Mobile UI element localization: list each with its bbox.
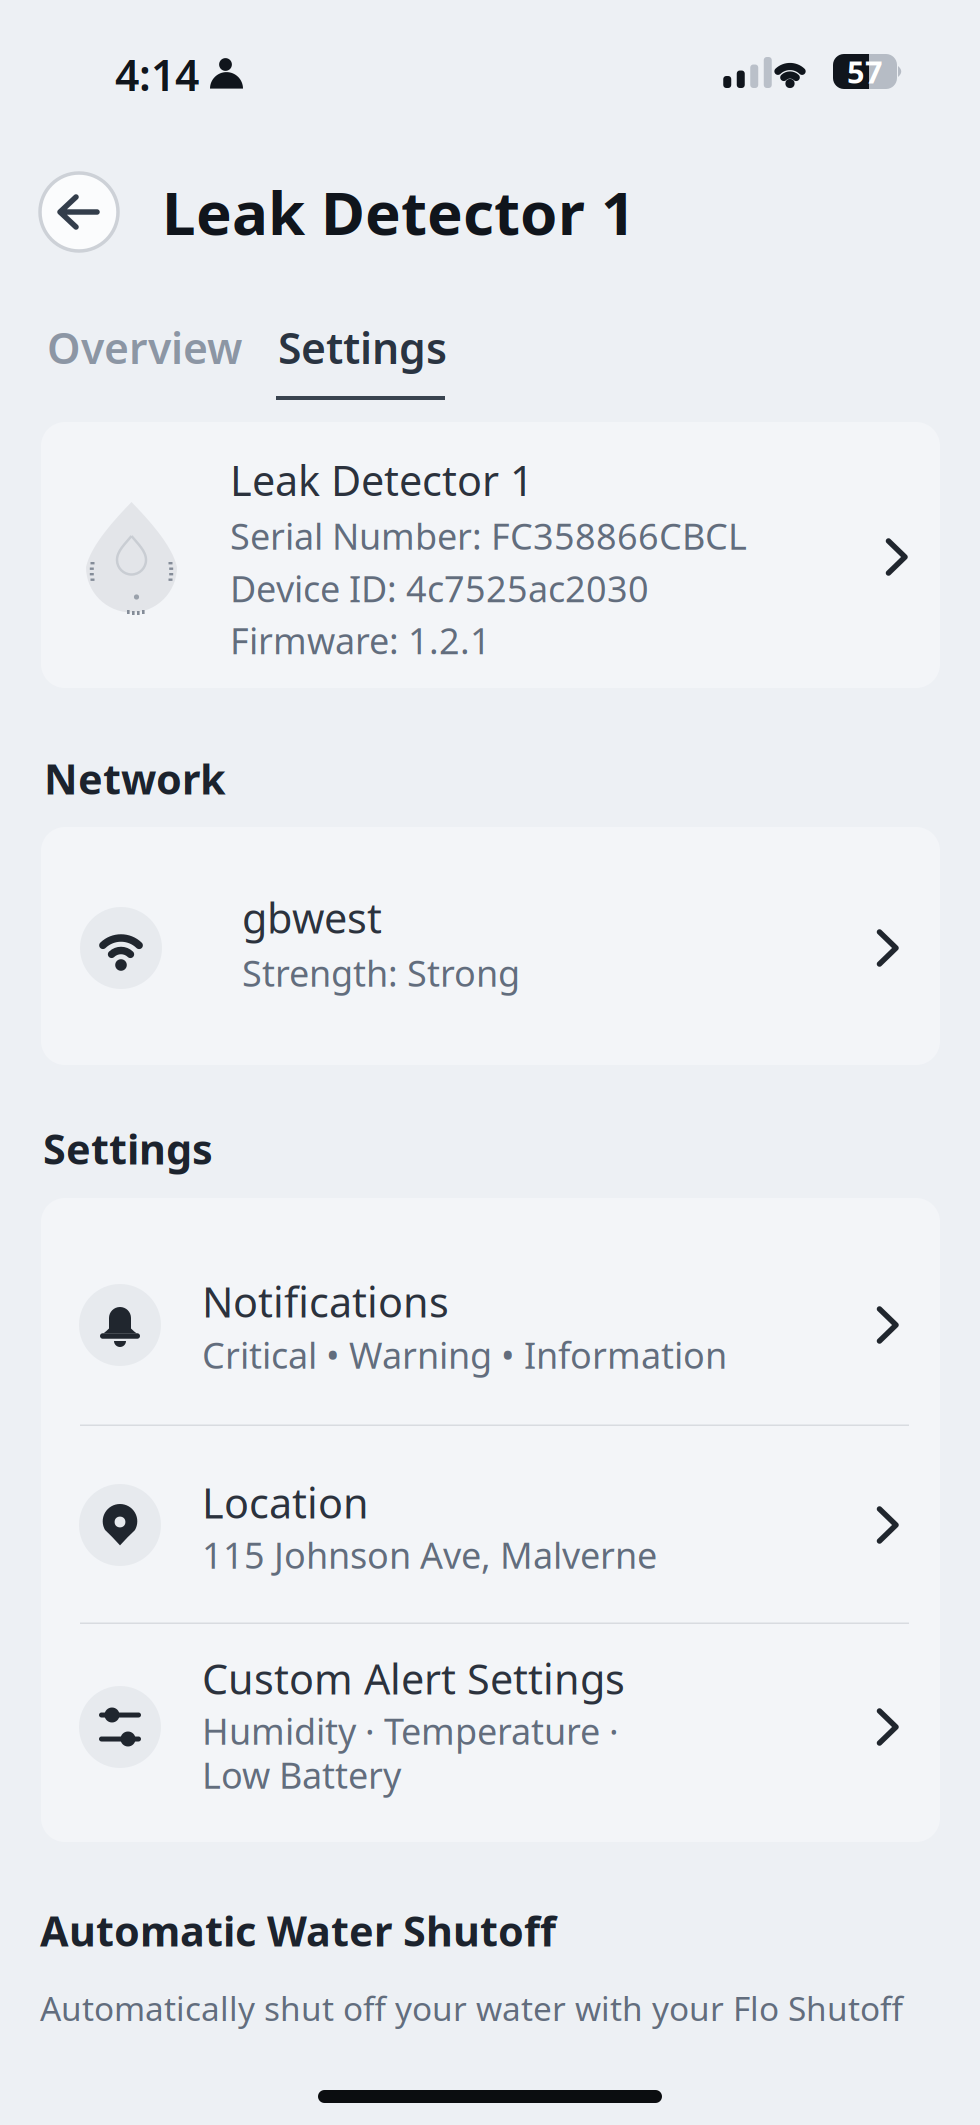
- staticText: Overview: [47, 319, 242, 376]
- staticText: Leak Detector 1: [162, 172, 635, 252]
- button[interactable]: gbwest: [41, 827, 940, 1065]
- staticText: 115 Johnson Ave, Malverne: [202, 1531, 657, 1579]
- staticText: Leak Detector 1: [230, 452, 534, 507]
- staticText: Notifications: [202, 1274, 449, 1329]
- button[interactable]: Settings: [276, 319, 445, 400]
- staticText: Humidity · Temperature ·: [202, 1707, 619, 1755]
- staticText: Critical • Warning • Information: [202, 1331, 727, 1379]
- staticText: Firmware: 1.2.1: [230, 616, 491, 664]
- button[interactable]: Custom Alert Settings: [41, 1624, 940, 1842]
- staticText: Automatic Water Shutoff: [40, 1903, 556, 1958]
- staticText: Serial Number: FC358866CBCL: [230, 512, 747, 560]
- button[interactable]: Notifications: [41, 1198, 940, 1425]
- staticText: Settings: [43, 1121, 213, 1176]
- staticText: Network: [44, 751, 226, 806]
- button[interactable]: Leak Detector 1: [41, 422, 940, 688]
- button[interactable]: Back: [40, 173, 118, 251]
- staticText: Strength: Strong: [242, 949, 520, 997]
- staticText: 57: [847, 51, 883, 92]
- staticText: Device ID: 4c7525ac2030: [230, 564, 649, 612]
- staticText: Settings: [278, 319, 447, 376]
- button[interactable]: Location: [41, 1426, 940, 1623]
- staticText: Low Battery: [202, 1751, 401, 1799]
- staticText: gbwest: [242, 890, 382, 945]
- staticText: Custom Alert Settings: [202, 1651, 625, 1706]
- button[interactable]: Overview: [47, 319, 242, 376]
- staticText: Location: [202, 1475, 369, 1530]
- staticText: 4:14: [115, 46, 199, 103]
- staticText: Automatically shut off your water with y…: [40, 1986, 903, 2030]
